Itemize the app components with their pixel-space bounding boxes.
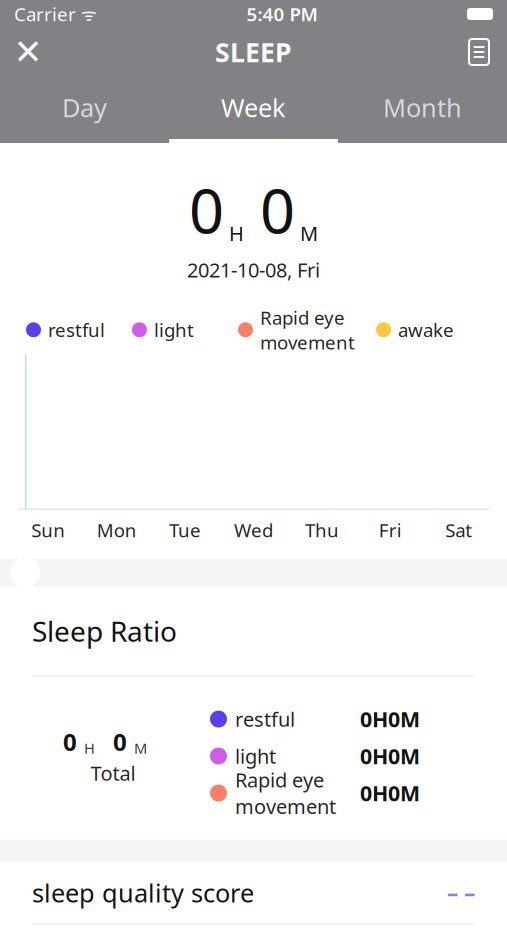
staticText: 0H0M: [360, 705, 420, 733]
staticText: 0H0M: [360, 779, 420, 807]
staticText: Mon: [97, 518, 137, 542]
staticText: SLEEP: [215, 34, 292, 70]
staticText: Carrier: [14, 2, 76, 26]
staticText: H: [229, 220, 244, 246]
staticText: Day: [62, 91, 107, 124]
staticText: restful: [48, 317, 105, 342]
staticText: light: [154, 317, 194, 342]
staticText: 0: [113, 726, 127, 758]
staticText: ᯤ: [76, 2, 97, 25]
staticText: awake: [398, 317, 454, 342]
staticText: 0: [189, 169, 224, 250]
staticText: sleep quality score: [32, 876, 254, 909]
staticText: Wed: [234, 518, 273, 542]
staticText: H: [84, 738, 95, 758]
staticText: 0: [63, 726, 77, 758]
staticText: Rapid eye movement: [235, 766, 336, 820]
button[interactable]: Records: [451, 28, 507, 76]
button[interactable]: sleep quality score: [0, 862, 507, 924]
staticText: Thu: [305, 518, 339, 542]
staticText: Month: [383, 91, 462, 124]
staticText: Total: [90, 760, 135, 786]
staticText: M: [134, 738, 147, 758]
staticText: Rapid eye movement: [260, 305, 355, 355]
staticText: Fri: [379, 518, 402, 542]
staticText: Sun: [31, 518, 65, 542]
staticText: 5:40 PM: [246, 2, 317, 26]
staticText: 0H0M: [360, 742, 420, 770]
staticText: restful: [235, 706, 295, 732]
staticText: Sat: [445, 518, 472, 542]
button[interactable]: Day: [0, 76, 169, 143]
button[interactable]: Month: [338, 76, 507, 143]
button[interactable]: Week: [169, 76, 338, 143]
button[interactable]: Close: [0, 28, 56, 76]
staticText: Week: [221, 91, 286, 124]
staticText: M: [300, 220, 318, 246]
staticText: light: [235, 743, 276, 769]
staticText: – –: [447, 877, 475, 908]
staticText: Sleep Ratio: [32, 612, 177, 650]
staticText: 0: [260, 169, 295, 250]
staticText: ✕: [13, 32, 42, 72]
staticText: 2021-10-08, Fri: [187, 256, 320, 283]
staticText: Tue: [169, 518, 201, 542]
